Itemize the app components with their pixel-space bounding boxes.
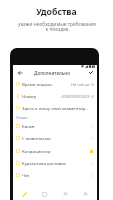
button[interactable]: Багаж (13, 120, 97, 132)
staticText: На сейчас (71, 82, 90, 87)
button[interactable]: Back (14, 67, 25, 78)
staticText: Опции (16, 115, 28, 120)
button[interactable]: Trips (35, 185, 54, 200)
button[interactable]: Done (85, 67, 96, 78)
button[interactable]: Курьерская доставка (13, 157, 97, 169)
staticText: Удобства (36, 6, 77, 18)
button[interactable]: Profile (56, 185, 75, 200)
button[interactable]: Номер (13, 90, 97, 102)
button[interactable]: Здесь я пишу свой комментар... (13, 102, 97, 114)
staticText: Номер (22, 93, 37, 99)
staticText: С животными (22, 135, 51, 141)
staticText: +380XXXXXXXXX (60, 94, 90, 99)
button[interactable]: Кондиционер (13, 145, 97, 157)
staticText: Кондиционер (22, 148, 51, 154)
staticText: Курьерская доставка (22, 160, 66, 166)
button[interactable]: Чек (13, 169, 97, 181)
staticText: Дополнительно (34, 70, 71, 76)
staticText: Чек (22, 172, 30, 178)
staticText: Багаж (22, 123, 35, 129)
button[interactable]: Время подачи (13, 78, 97, 90)
staticText: укажи необходимые требования к поездке (18, 21, 96, 33)
button[interactable]: More (76, 185, 95, 200)
button[interactable]: Order a ride (15, 185, 34, 200)
button[interactable]: С животными (13, 132, 97, 144)
staticText: Время подачи (22, 81, 52, 87)
staticText: Здесь я пишу свой комментар... (22, 105, 89, 111)
